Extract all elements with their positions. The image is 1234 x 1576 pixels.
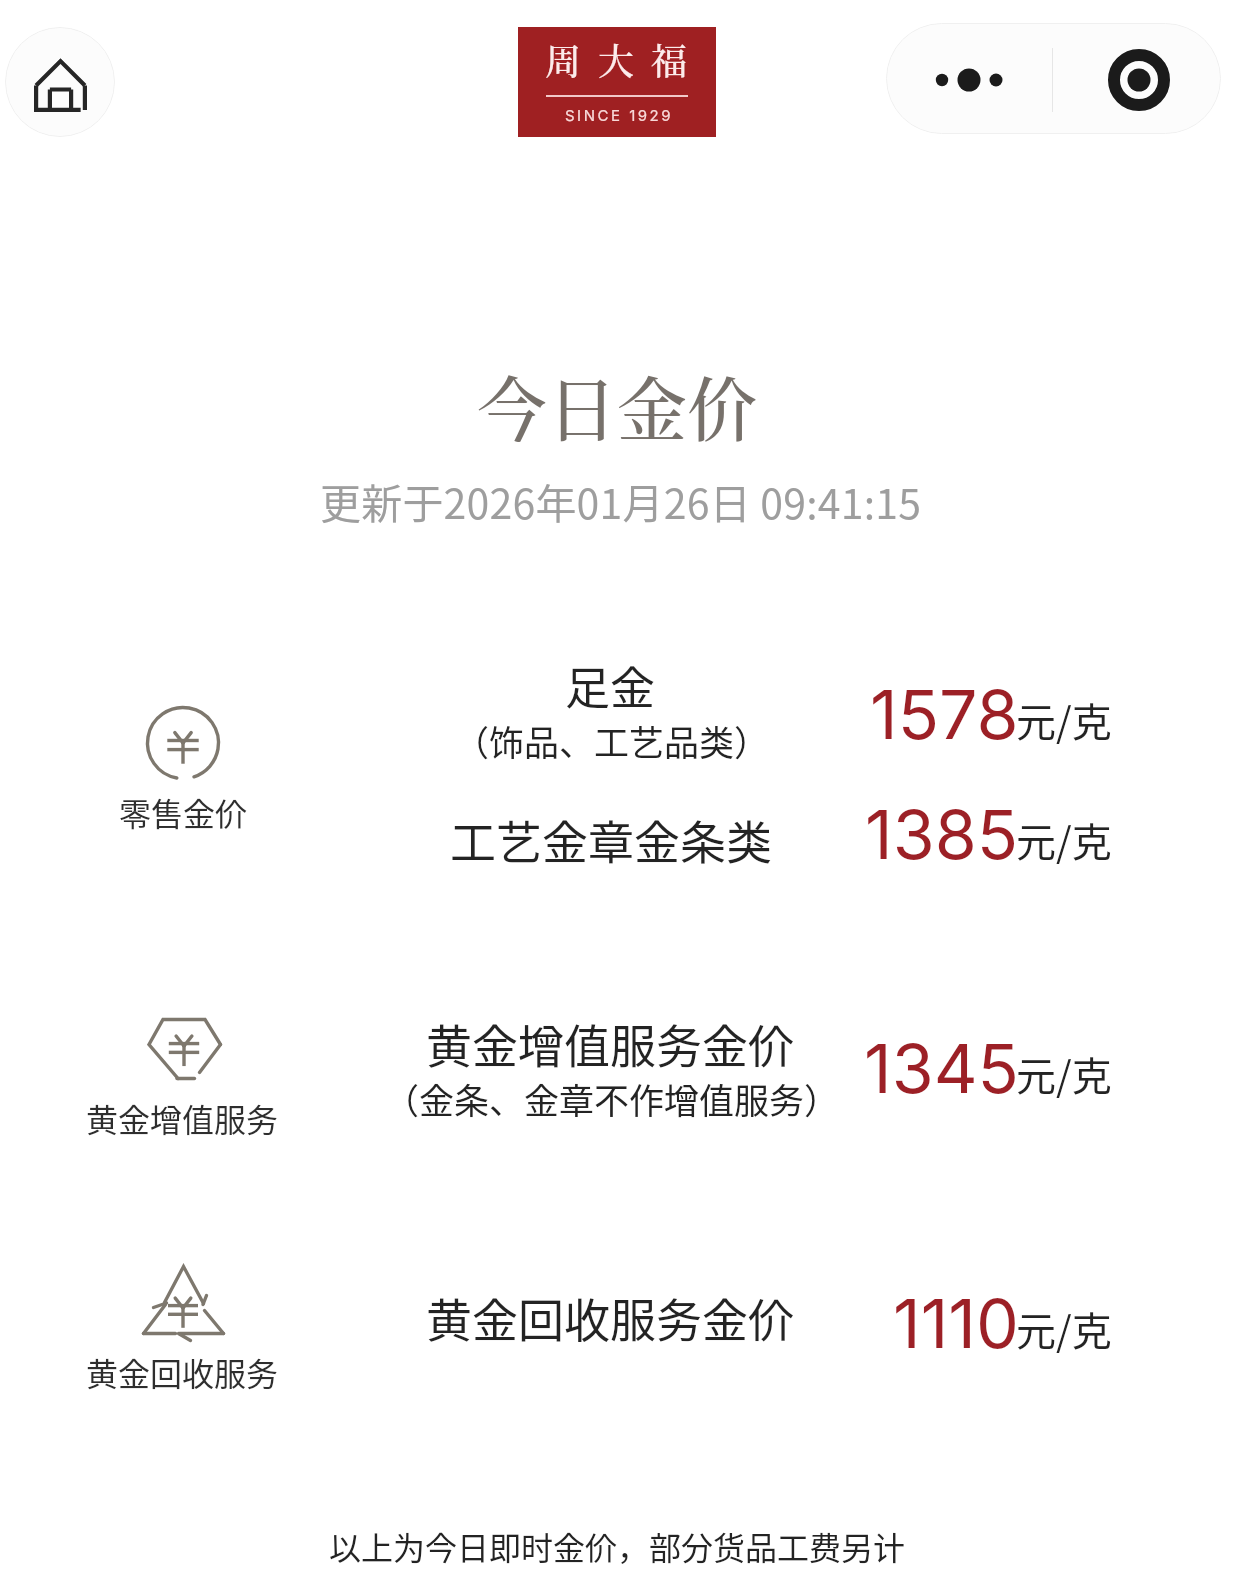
staticText: 1578 [870,673,1019,755]
staticText: 元/克 [1016,1300,1112,1358]
staticText: 元/克 [1016,691,1112,749]
staticText: 元/克 [1016,1045,1112,1103]
staticText: 周大福 [545,34,705,86]
staticText: 黄金增值服务金价 [426,1010,794,1077]
staticText: 以上为今日即时金价，部分货品工费另计 [329,1523,906,1569]
staticText: 今日金价 [477,355,757,456]
staticText: 工艺金章金条类 [450,806,772,873]
staticText: 黄金回收服务 [86,1349,279,1395]
staticText: 1385 [865,793,1019,875]
staticText: 1345 [864,1027,1019,1109]
staticText: 黄金回收服务金价 [426,1284,794,1351]
button[interactable]: Chow Tai Fook logo [518,27,716,137]
button[interactable]: Close mini program [1053,23,1221,134]
staticText: （金条、金章不作增值服务） [384,1073,840,1124]
staticText: （饰品、工艺品类） [454,715,770,766]
staticText: 足金 [565,653,656,718]
button[interactable]: More options [886,23,1052,134]
staticText: SINCE 1929 [565,106,673,124]
staticText: 零售金价 [119,789,248,835]
staticText: 1110 [893,1282,1019,1364]
staticText: 更新于2026年01月26日 09:41:15 [320,471,922,530]
staticText: 元/克 [1016,811,1112,869]
staticText: 黄金增值服务 [86,1095,279,1141]
button[interactable]: Home [5,27,115,137]
